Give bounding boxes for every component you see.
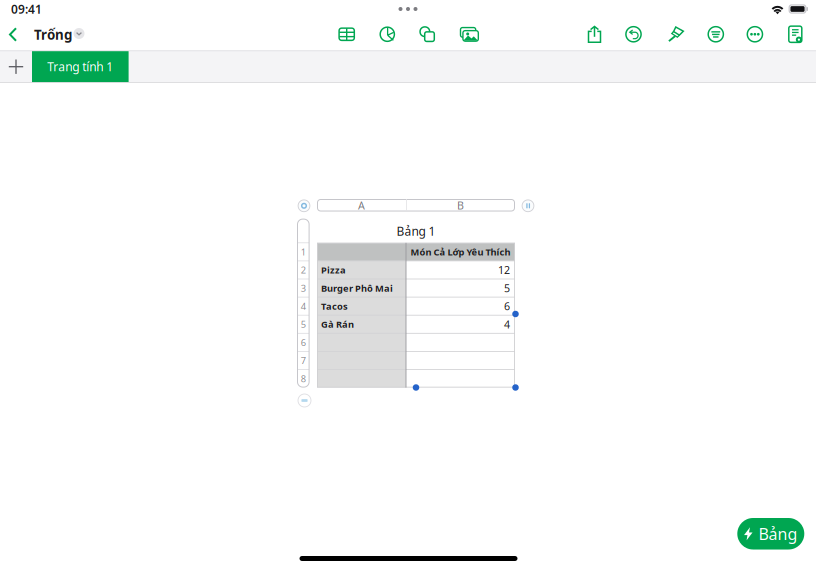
staticText: Pizza (321, 264, 346, 276)
button[interactable]: Insert table (334, 21, 360, 47)
staticText: Tacos (321, 300, 348, 312)
staticText: 4 (504, 317, 510, 331)
button[interactable]: Format (662, 21, 688, 47)
button[interactable]: Insert media (456, 21, 482, 47)
button[interactable]: Document options (782, 21, 808, 47)
button[interactable]: Insert shape (414, 21, 440, 47)
button[interactable]: Organize (703, 21, 729, 47)
button[interactable]: Share (581, 21, 607, 47)
staticText: 5 (301, 318, 306, 330)
staticText: 1 (301, 246, 306, 258)
staticText: Bảng 1 (396, 223, 435, 239)
staticText: B (457, 198, 464, 212)
staticText: Gà Rán (321, 318, 354, 330)
staticText: Burger Phô Mai (321, 282, 393, 294)
staticText: 6 (301, 336, 306, 349)
staticText: 2 (301, 264, 306, 276)
button[interactable]: Bảng (737, 518, 804, 549)
button[interactable]: Insert chart (374, 21, 400, 47)
staticText: 7 (301, 354, 306, 367)
staticText: 09:41 (11, 1, 42, 17)
staticText: 3 (301, 282, 306, 294)
staticText: Trống (34, 26, 72, 43)
button[interactable]: Trống (34, 19, 78, 49)
staticText: 6 (504, 299, 510, 313)
button[interactable]: Document options (73, 28, 84, 39)
button[interactable]: Undo (620, 21, 646, 47)
staticText: A (358, 198, 365, 212)
staticText: Trang tính 1 (47, 59, 113, 75)
staticText: 4 (301, 300, 306, 312)
staticText: 12 (498, 263, 510, 277)
staticText: 8 (301, 372, 306, 385)
staticText: Bảng (758, 523, 797, 544)
button[interactable]: More (742, 21, 768, 47)
staticText: 5 (504, 281, 510, 295)
button[interactable]: Back (4, 19, 22, 49)
button[interactable]: Add sheet (0, 51, 32, 82)
button[interactable]: Trang tính 1 (32, 51, 129, 82)
staticText: Món Cả Lớp Yêu Thích (410, 246, 510, 258)
